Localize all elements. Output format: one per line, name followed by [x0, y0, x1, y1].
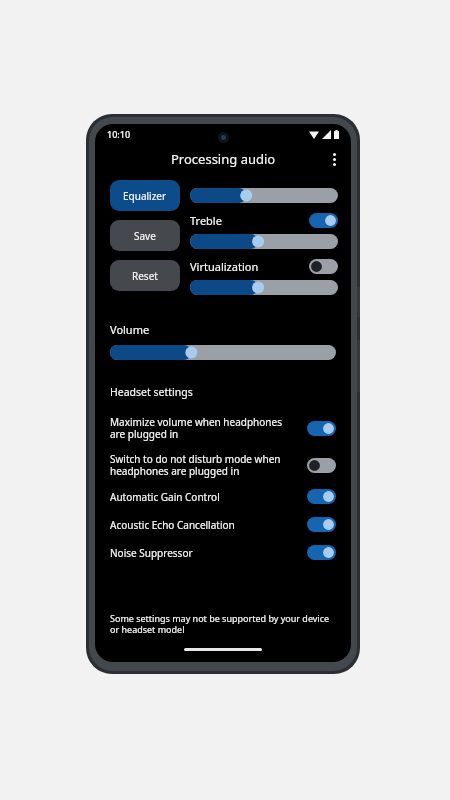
- button[interactable]: [190, 187, 338, 204]
- staticText: Treble: [190, 213, 309, 228]
- button[interactable]: Toggle on: [307, 489, 336, 504]
- button[interactable]: Acoustic Echo Cancellation: [110, 517, 336, 532]
- staticText: Maximize volume when headphones are plug…: [110, 415, 297, 441]
- staticText: Acoustic Echo Cancellation: [110, 518, 297, 532]
- button[interactable]: More options: [321, 146, 347, 172]
- button[interactable]: Maximize volume when headphones are plug…: [110, 415, 336, 441]
- button[interactable]: Toggle on: [309, 213, 338, 228]
- button[interactable]: Treble: [190, 213, 338, 228]
- staticText: Some settings may not be supported by yo…: [110, 612, 336, 636]
- staticText: 10:10: [107, 128, 131, 140]
- staticText: Virtualization: [190, 259, 309, 274]
- button[interactable]: Toggle on: [307, 517, 336, 532]
- button[interactable]: Toggle on: [307, 421, 336, 436]
- staticText: Noise Suppressor: [110, 546, 297, 560]
- button[interactable]: Equalizer: [110, 180, 180, 211]
- button[interactable]: Switch to do not disturb mode when headp…: [110, 452, 336, 478]
- button[interactable]: Save: [110, 220, 180, 251]
- button[interactable]: Toggle on: [307, 545, 336, 560]
- button[interactable]: Noise Suppressor: [110, 545, 336, 560]
- staticText: Automatic Gain Control: [110, 490, 297, 504]
- button[interactable]: [190, 279, 338, 296]
- button[interactable]: Virtualization: [190, 259, 338, 274]
- staticText: Equalizer: [123, 189, 167, 203]
- staticText: Reset: [132, 269, 158, 283]
- staticText: Headset settings: [110, 385, 193, 399]
- button[interactable]: Reset: [110, 260, 180, 291]
- button[interactable]: Toggle off: [307, 458, 336, 473]
- staticText: Volume: [110, 322, 150, 337]
- button[interactable]: [190, 233, 338, 250]
- staticText: Save: [134, 229, 156, 243]
- button[interactable]: Automatic Gain Control: [110, 489, 336, 504]
- staticText: Switch to do not disturb mode when headp…: [110, 452, 297, 478]
- staticText: Processing audio: [171, 150, 276, 168]
- button[interactable]: [110, 344, 336, 361]
- button[interactable]: Toggle off: [309, 259, 338, 274]
